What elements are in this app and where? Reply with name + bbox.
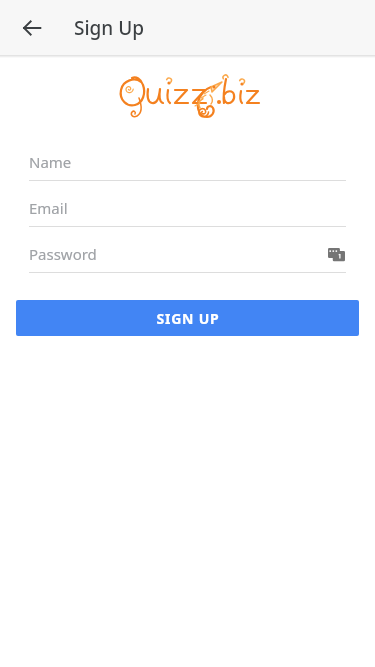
- staticText: Sign Up: [74, 15, 145, 41]
- staticText: Name: [29, 152, 72, 172]
- staticText: SIGN UP: [156, 309, 220, 328]
- button[interactable]: Email: [0, 190, 375, 236]
- button[interactable]: Back: [16, 12, 48, 44]
- staticText: Email: [29, 198, 68, 218]
- staticText: Password: [29, 244, 97, 264]
- button[interactable]: Name: [0, 144, 375, 190]
- button[interactable]: SIGN UP: [16, 300, 359, 336]
- button[interactable]: Autofill password: [326, 244, 346, 264]
- button[interactable]: Password: [0, 236, 375, 282]
